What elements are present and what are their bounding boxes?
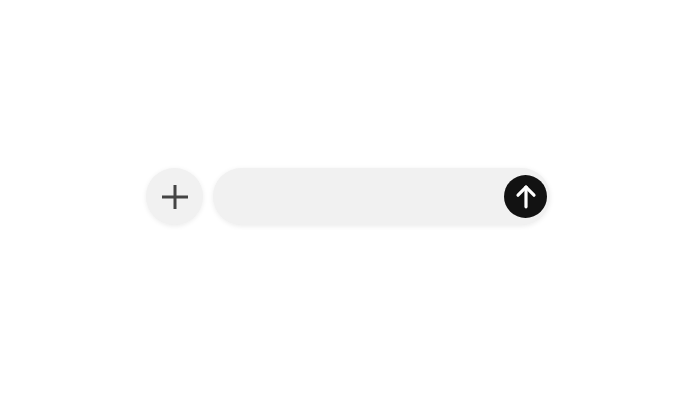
button[interactable]: Message input — [213, 168, 550, 225]
button[interactable]: Send — [504, 175, 547, 218]
button[interactable]: Add attachment — [146, 168, 203, 225]
